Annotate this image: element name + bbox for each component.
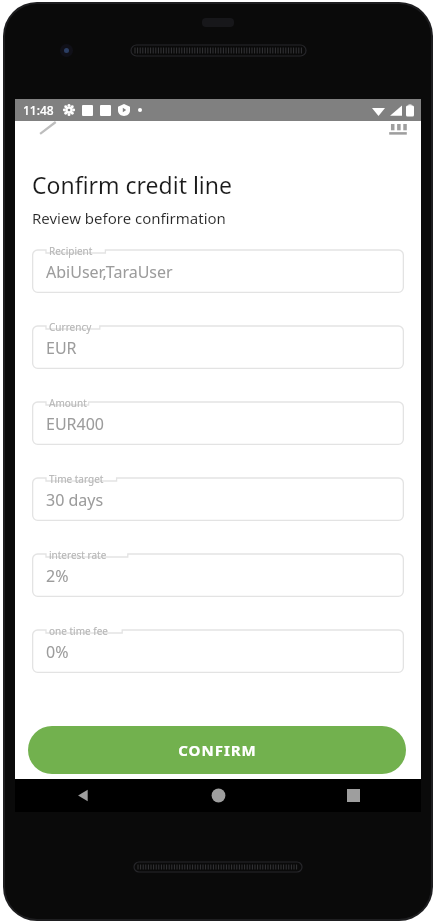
- staticText: Currency: [49, 320, 92, 334]
- staticText: EUR: [46, 337, 77, 359]
- button[interactable]: Menu: [387, 124, 409, 138]
- button[interactable]: interest rate: [32, 547, 404, 597]
- staticText: 0%: [46, 641, 69, 663]
- staticText: 30 days: [46, 489, 104, 511]
- button[interactable]: Currency: [32, 319, 404, 369]
- staticText: Amount: [49, 396, 87, 410]
- button[interactable]: Recipient: [32, 243, 404, 293]
- button[interactable]: Time target: [32, 471, 404, 521]
- button[interactable]: CONFIRM: [28, 726, 406, 774]
- button[interactable]: Amount: [32, 395, 404, 445]
- staticText: 11:48: [23, 102, 54, 118]
- button[interactable]: Back: [37, 121, 63, 135]
- button[interactable]: Home: [151, 779, 286, 812]
- staticText: AbiUser,TaraUser: [46, 261, 173, 283]
- staticText: CONFIRM: [178, 740, 257, 760]
- staticText: EUR400: [46, 413, 105, 435]
- staticText: Review before confirmation: [32, 208, 226, 228]
- staticText: Recipient: [49, 244, 93, 258]
- staticText: Time target: [49, 472, 104, 486]
- staticText: 2%: [46, 565, 69, 587]
- staticText: one time fee: [49, 624, 108, 638]
- staticText: interest rate: [49, 548, 107, 562]
- button[interactable]: Recent apps: [286, 779, 421, 812]
- button[interactable]: one time fee: [32, 623, 404, 673]
- button[interactable]: Back: [15, 779, 151, 812]
- staticText: Confirm credit line: [32, 169, 232, 200]
